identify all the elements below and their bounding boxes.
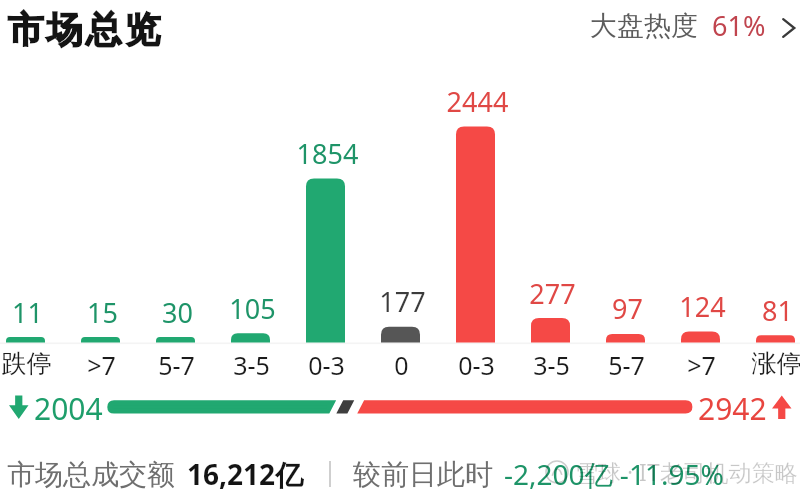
- staticText: 15: [63, 294, 142, 331]
- staticText: 124: [663, 288, 742, 325]
- staticText: 3-5: [512, 348, 591, 382]
- staticText: 雪球 · IT老司机动策略: [575, 456, 798, 487]
- button[interactable]: 市场总成交额: [7, 455, 724, 493]
- staticText: 81: [738, 292, 800, 329]
- staticText: 2444: [438, 83, 517, 120]
- staticText: 11: [0, 294, 67, 331]
- staticText: 1854: [288, 135, 367, 172]
- button[interactable]: 市场总览: [6, 7, 162, 52]
- button[interactable]: 2004: [0, 390, 800, 426]
- staticText: 2942: [698, 388, 767, 424]
- staticText: 0-3: [437, 348, 516, 382]
- button[interactable]: 大盘热度: [590, 7, 796, 44]
- staticText: 61%: [712, 7, 766, 44]
- staticText: 105: [213, 290, 292, 327]
- staticText: 涨停: [737, 348, 800, 379]
- staticText: 0: [362, 348, 441, 382]
- staticText: >7: [62, 348, 141, 382]
- staticText: >7: [662, 348, 741, 382]
- staticText: 0-3: [287, 348, 366, 382]
- other: Market heat detail: [782, 18, 796, 38]
- staticText: 5-7: [587, 348, 666, 382]
- staticText: 30: [138, 294, 217, 331]
- staticText: -2,200亿 -11.95%: [504, 455, 724, 493]
- staticText: 5-7: [137, 348, 216, 382]
- staticText: 跌停: [0, 348, 66, 379]
- staticText: 97: [588, 290, 667, 327]
- staticText: 16,212亿: [187, 455, 304, 493]
- staticText: 2004: [34, 388, 103, 424]
- staticText: 3-5: [212, 348, 291, 382]
- staticText: 177: [363, 283, 442, 320]
- staticText: 市场总览: [6, 7, 162, 52]
- staticText: 大盘热度: [590, 9, 698, 43]
- staticText: 市场总成交额: [7, 457, 175, 492]
- staticText: 277: [513, 275, 592, 312]
- staticText: 较前日此时: [353, 457, 493, 492]
